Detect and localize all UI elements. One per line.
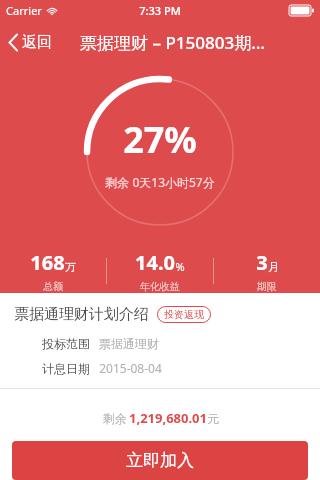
staticText: 168	[30, 249, 65, 276]
button[interactable]: 立即加入	[12, 441, 308, 480]
button[interactable]: 返回	[0, 27, 60, 58]
staticText: 立即加入	[126, 450, 194, 471]
staticText: 3	[256, 249, 268, 276]
staticText: 投标范围	[42, 336, 90, 351]
staticText: 返回	[22, 33, 52, 52]
staticText: 月	[268, 260, 279, 274]
staticText: 7:33 PM	[139, 3, 181, 18]
staticText: %	[175, 259, 185, 274]
staticText: 元	[207, 411, 219, 426]
staticText: 票据通理财	[99, 336, 159, 351]
staticText: 剩余	[101, 410, 129, 426]
staticText: 剩余 0天13小时57分	[105, 174, 215, 190]
staticText: 万	[65, 260, 76, 274]
staticText: 27%	[123, 115, 197, 164]
staticText: 计息日期	[42, 361, 90, 376]
staticText: 投资返现	[164, 308, 204, 321]
staticText: 2015-08-04	[99, 360, 162, 376]
staticText: 期限	[257, 280, 277, 293]
staticText: Carrier	[6, 3, 42, 18]
staticText: 票据通理财计划介绍	[14, 305, 149, 324]
staticText: 1,219,680.01	[129, 409, 207, 427]
staticText: 年化收益	[140, 280, 180, 293]
staticText: 票据理财 – P150803期…	[80, 31, 265, 54]
button[interactable]: 投资返现	[157, 306, 211, 323]
staticText: 14.0	[135, 249, 175, 276]
staticText: 总额	[43, 280, 63, 293]
